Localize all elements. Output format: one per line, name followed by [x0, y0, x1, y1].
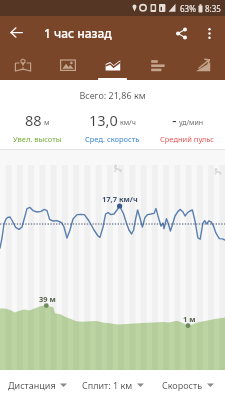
button[interactable]: 88	[0, 110, 75, 144]
staticText: уд/мин	[179, 118, 204, 128]
button[interactable]: Дистанция	[0, 379, 75, 391]
staticText: Дистанция	[8, 379, 56, 391]
staticText: 88	[25, 110, 42, 130]
staticText: 39 м	[39, 294, 56, 304]
staticText: 8:35	[205, 3, 221, 14]
button[interactable]: Back	[0, 16, 33, 49]
button[interactable]: Share	[165, 17, 197, 49]
staticText: 17,7 км/ч	[102, 194, 138, 204]
button[interactable]: Chart	[90, 49, 135, 80]
button[interactable]: Map	[0, 49, 45, 80]
button[interactable]: Elevation	[180, 49, 225, 80]
staticText: Всего: 21,86 км	[0, 89, 225, 101]
staticText: Сплит: 1 км	[82, 379, 133, 391]
button[interactable]: More options	[197, 21, 221, 45]
staticText: м	[44, 118, 50, 128]
button[interactable]: Скорость	[150, 379, 225, 391]
staticText: Скорость	[162, 379, 203, 391]
staticText: -	[172, 110, 177, 130]
staticText: 63%	[180, 3, 196, 14]
staticText: 1 м	[183, 314, 196, 324]
staticText: 1 час назад	[44, 25, 112, 41]
button[interactable]: Splits	[135, 49, 180, 80]
staticText: 13,0	[89, 110, 118, 130]
staticText: Увел. высоты	[13, 134, 62, 144]
staticText: км/ч	[120, 118, 136, 128]
button[interactable]: Сплит: 1 км	[75, 379, 150, 391]
button[interactable]: Photos	[45, 49, 90, 80]
staticText: Сред. скорость	[85, 134, 140, 144]
button[interactable]: 13,0	[75, 110, 150, 144]
button[interactable]: -	[150, 110, 225, 144]
staticText: Средний пульс	[160, 134, 215, 144]
